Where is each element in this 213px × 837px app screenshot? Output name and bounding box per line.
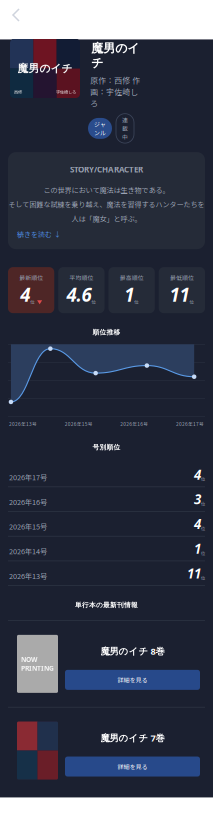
staticText: 魔男のイチ 8巻	[100, 645, 164, 657]
staticText: この世界において魔法は生き物である。	[43, 185, 169, 195]
staticText: 原作：西修 作画：宇佐崎しろ	[90, 74, 140, 109]
staticText: 位	[201, 501, 205, 507]
staticText: 位	[91, 299, 96, 305]
staticText: 2026年13号	[9, 420, 37, 427]
staticText: 11	[187, 564, 201, 582]
staticText: 続きを読む ↓	[17, 229, 61, 239]
staticText: 2026年15号	[65, 420, 93, 427]
staticText: 魔男のイチ	[17, 62, 72, 75]
staticText: 宇佐崎しろ	[56, 89, 76, 95]
staticText: 最新順位	[19, 273, 43, 282]
staticText: 2026年15号	[9, 521, 47, 532]
staticText: 4	[20, 282, 30, 307]
staticText: 位	[201, 575, 205, 581]
staticText: 4	[194, 515, 201, 533]
staticText: 位	[30, 299, 35, 305]
button[interactable]: 詳細を見る	[65, 670, 200, 690]
staticText: 単行本の最新刊情報	[75, 601, 138, 609]
staticText: 最高順位	[120, 273, 144, 282]
staticText: ジャンル	[94, 120, 106, 137]
staticText: 2026年13号	[9, 570, 47, 581]
staticText: 位	[201, 525, 205, 532]
staticText: 人は「魔女」と呼ぶ。	[71, 213, 141, 224]
staticText: 平均順位	[69, 273, 93, 282]
staticText: 位	[189, 299, 194, 305]
staticText: 魔男のイチ	[91, 41, 139, 70]
button[interactable]: 連載中	[116, 114, 134, 143]
button[interactable]: ジャンル	[88, 118, 112, 139]
staticText: STORY/CHARACTER	[70, 164, 143, 175]
button[interactable]: 詳細を見る	[65, 757, 200, 777]
staticText: 西修	[14, 89, 22, 95]
staticText: 号別順位	[92, 443, 120, 451]
staticText: 3	[194, 490, 201, 508]
staticText: 連載中	[122, 116, 128, 141]
staticText: 詳細を見る	[117, 675, 147, 684]
staticText: 4	[194, 466, 201, 483]
staticText: 4.6	[66, 282, 91, 307]
staticText: そして困難な試練を乗り越え、魔法を習得するハンターたちを	[8, 199, 204, 209]
button[interactable]: 続きを読む ↓	[17, 229, 61, 239]
staticText: 1	[194, 540, 201, 557]
staticText: 順位推移	[92, 328, 120, 336]
staticText: 2026年16号	[9, 496, 47, 507]
staticText: 最低順位	[170, 273, 194, 282]
staticText: 2026年16号	[120, 420, 148, 427]
staticText: 魔男のイチ 7巻	[100, 732, 164, 744]
staticText: 1	[124, 282, 134, 307]
staticText: 位	[201, 476, 205, 482]
staticText: 2026年17号	[9, 472, 47, 482]
staticText: 2026年14号	[9, 546, 47, 556]
staticText: 詳細を見る	[117, 762, 147, 771]
staticText: NOW PRINTING	[21, 655, 54, 673]
staticText: 11	[169, 282, 189, 307]
staticText: 魔男のイチ	[79, 8, 134, 21]
staticText: 2026年17号	[176, 420, 204, 427]
staticText: 位	[201, 550, 205, 556]
staticText: 位	[134, 299, 139, 305]
button[interactable]: Back	[0, 4, 28, 26]
